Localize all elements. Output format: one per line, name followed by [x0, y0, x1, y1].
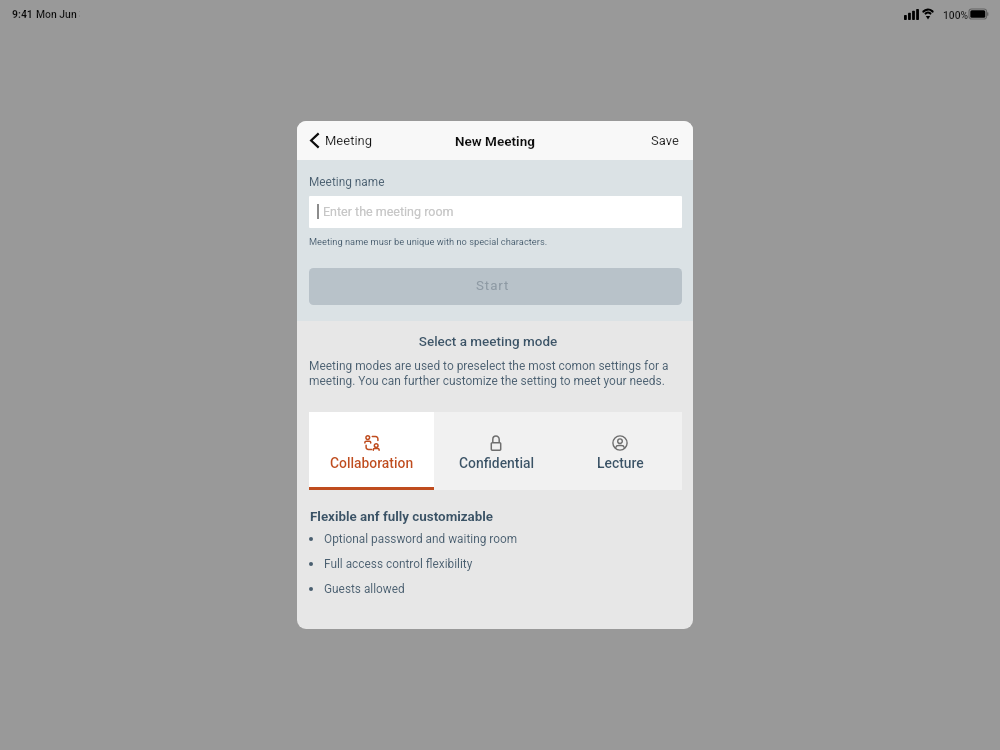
staticText: Save	[651, 133, 679, 148]
staticText: Mon Jun 3	[36, 8, 80, 20]
staticText: Guests allowed	[324, 582, 405, 596]
staticText: Full access control flexibility	[324, 557, 473, 571]
staticText: Flexible anf fully customizable	[310, 509, 494, 525]
staticText: New Meeting	[455, 133, 535, 149]
staticText: Meeting modes are used to preselect the …	[309, 359, 679, 388]
button[interactable]: Save	[637, 126, 693, 155]
button[interactable]: Start	[309, 268, 682, 305]
other: Back	[310, 133, 319, 148]
staticText: Meeting	[325, 133, 373, 148]
button[interactable]: Back	[297, 126, 383, 155]
button[interactable]: Confidential	[434, 412, 558, 490]
button[interactable]: Collaboration	[309, 412, 434, 490]
staticText: Confidential	[459, 455, 534, 471]
staticText: Collaboration	[330, 455, 414, 471]
staticText: Lecture	[597, 455, 644, 471]
staticText: Start	[476, 278, 510, 294]
staticText: Meeting name musr be unique with no spec…	[309, 236, 548, 247]
button[interactable]: Lecture	[558, 412, 682, 490]
staticText: 9:41	[12, 8, 33, 20]
staticText: Optional password and waiting room	[324, 532, 518, 546]
staticText: 100%	[943, 9, 969, 21]
button[interactable]: Enter the meeting room	[309, 196, 682, 228]
staticText: Enter the meeting room	[323, 204, 454, 219]
staticText: Meeting name	[309, 175, 385, 189]
staticText: Select a meeting mode	[309, 333, 667, 349]
